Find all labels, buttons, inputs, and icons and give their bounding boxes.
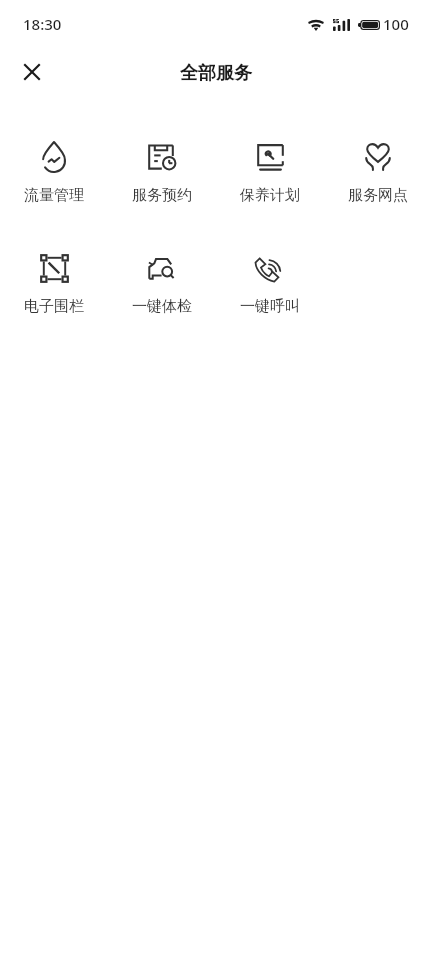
staticText: 18:30: [23, 14, 62, 34]
staticText: 流量管理: [24, 186, 84, 205]
button[interactable]: 流量管理: [0, 139, 108, 205]
button[interactable]: 服务预约: [108, 139, 216, 205]
button[interactable]: Close: [9, 49, 54, 94]
staticText: 服务预约: [132, 186, 192, 205]
staticText: 一键呼叫: [240, 297, 300, 316]
staticText: 服务网点: [348, 186, 408, 205]
staticText: 保养计划: [240, 186, 300, 205]
button[interactable]: 保养计划: [216, 139, 324, 205]
staticText: 电子围栏: [24, 297, 84, 316]
button[interactable]: 一键呼叫: [216, 250, 324, 316]
staticText: 全部服务: [180, 62, 252, 85]
button[interactable]: 服务网点: [324, 139, 432, 205]
button[interactable]: 一键体检: [108, 250, 216, 316]
staticText: 100: [383, 14, 409, 34]
button[interactable]: 电子围栏: [0, 250, 108, 316]
staticText: 一键体检: [132, 297, 192, 316]
